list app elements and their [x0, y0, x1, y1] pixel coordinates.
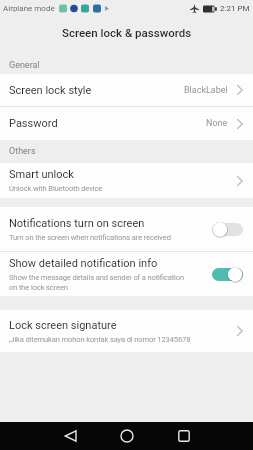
button[interactable]: Smart unlock	[0, 163, 253, 198]
staticText: Airplane mode	[3, 4, 55, 13]
staticText: Unlock with Bluetooth device	[9, 184, 103, 193]
button[interactable]	[162, 422, 206, 450]
button[interactable]: Show detailed notification info	[0, 252, 253, 296]
button[interactable]: Screen lock style	[0, 74, 253, 106]
staticText: None	[206, 118, 228, 129]
staticText: Show detailed notification info	[9, 257, 158, 270]
staticText: Turn on the screen when notifications ar…	[9, 233, 171, 242]
staticText: ,Jika ditemukan mohon kontak saya di nom…	[9, 335, 191, 344]
staticText: BlackLabel	[184, 85, 228, 96]
staticText: Others	[9, 146, 36, 157]
staticText: Show the message details and sender of a…	[9, 273, 184, 292]
staticText: Smart unlock	[9, 168, 74, 181]
button[interactable]: Notifications turn on screen	[0, 207, 253, 251]
button[interactable]	[48, 422, 92, 450]
button[interactable]: Password	[0, 107, 253, 140]
staticText: General	[9, 60, 40, 71]
button[interactable]: Lock screen signature	[0, 310, 253, 352]
staticText: Notifications turn on screen	[9, 217, 145, 230]
staticText: Screen lock & passwords	[62, 26, 192, 39]
staticText: Screen lock style	[9, 84, 92, 97]
staticText: Lock screen signature	[9, 319, 117, 332]
staticText: 2:21 PM	[220, 4, 250, 13]
button[interactable]	[105, 422, 149, 450]
staticText: Password	[9, 117, 58, 130]
